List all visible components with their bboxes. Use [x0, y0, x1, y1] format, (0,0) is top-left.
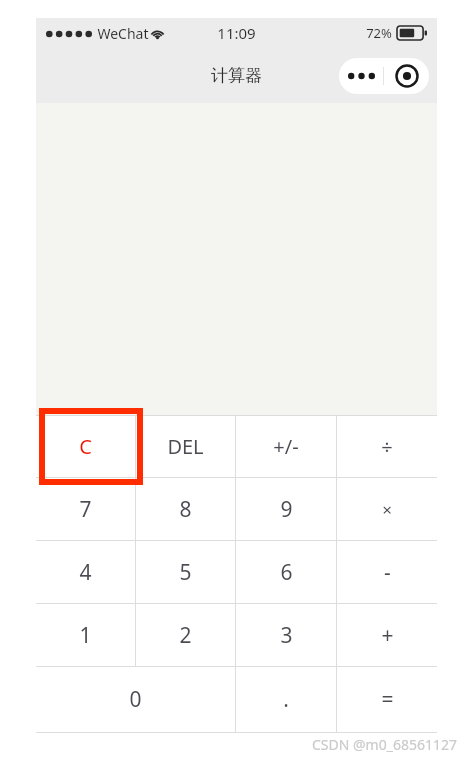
button[interactable]: 2 [136, 604, 235, 666]
button[interactable]: × [337, 478, 437, 540]
staticText: 5 [179, 558, 192, 587]
button[interactable]: ÷ [337, 416, 437, 477]
staticText: DEL [167, 433, 204, 460]
staticText: 0 [129, 685, 142, 714]
staticText: 1 [79, 621, 92, 650]
staticText: + [381, 621, 394, 650]
staticText: 计算器 [211, 65, 262, 86]
button[interactable]: 5 [136, 541, 235, 603]
button[interactable]: 6 [236, 541, 336, 603]
button[interactable]: 7 [36, 478, 135, 540]
staticText: - [384, 558, 391, 587]
button[interactable]: More options and close [339, 58, 429, 94]
staticText: 11:09 [217, 23, 256, 43]
staticText: WeChat [97, 24, 149, 43]
button[interactable]: 3 [236, 604, 336, 666]
button[interactable]: - [337, 541, 437, 603]
button[interactable]: . [236, 667, 336, 732]
staticText: 4 [79, 558, 92, 587]
button[interactable]: 8 [136, 478, 235, 540]
staticText: 9 [280, 495, 293, 524]
staticText: 3 [280, 621, 293, 650]
button[interactable]: 4 [36, 541, 135, 603]
button[interactable]: 9 [236, 478, 336, 540]
button[interactable]: 1 [36, 604, 135, 666]
staticText: . [283, 685, 289, 714]
staticText: 6 [280, 558, 293, 587]
staticText: 2 [179, 621, 192, 650]
button[interactable]: C [36, 416, 135, 477]
button[interactable]: + [337, 604, 437, 666]
staticText: 8 [179, 495, 192, 524]
staticText: C [79, 433, 92, 460]
button[interactable]: = [337, 667, 437, 732]
staticText: × [382, 498, 392, 521]
staticText: = [381, 685, 394, 714]
button[interactable]: +/- [236, 416, 336, 477]
staticText: ÷ [381, 433, 393, 460]
staticText: +/- [273, 433, 299, 460]
button[interactable]: 0 [36, 667, 235, 732]
staticText: 72% [366, 24, 392, 42]
button[interactable]: DEL [136, 416, 235, 477]
staticText: 7 [79, 495, 92, 524]
staticText: CSDN @m0_68561127 [312, 735, 457, 754]
